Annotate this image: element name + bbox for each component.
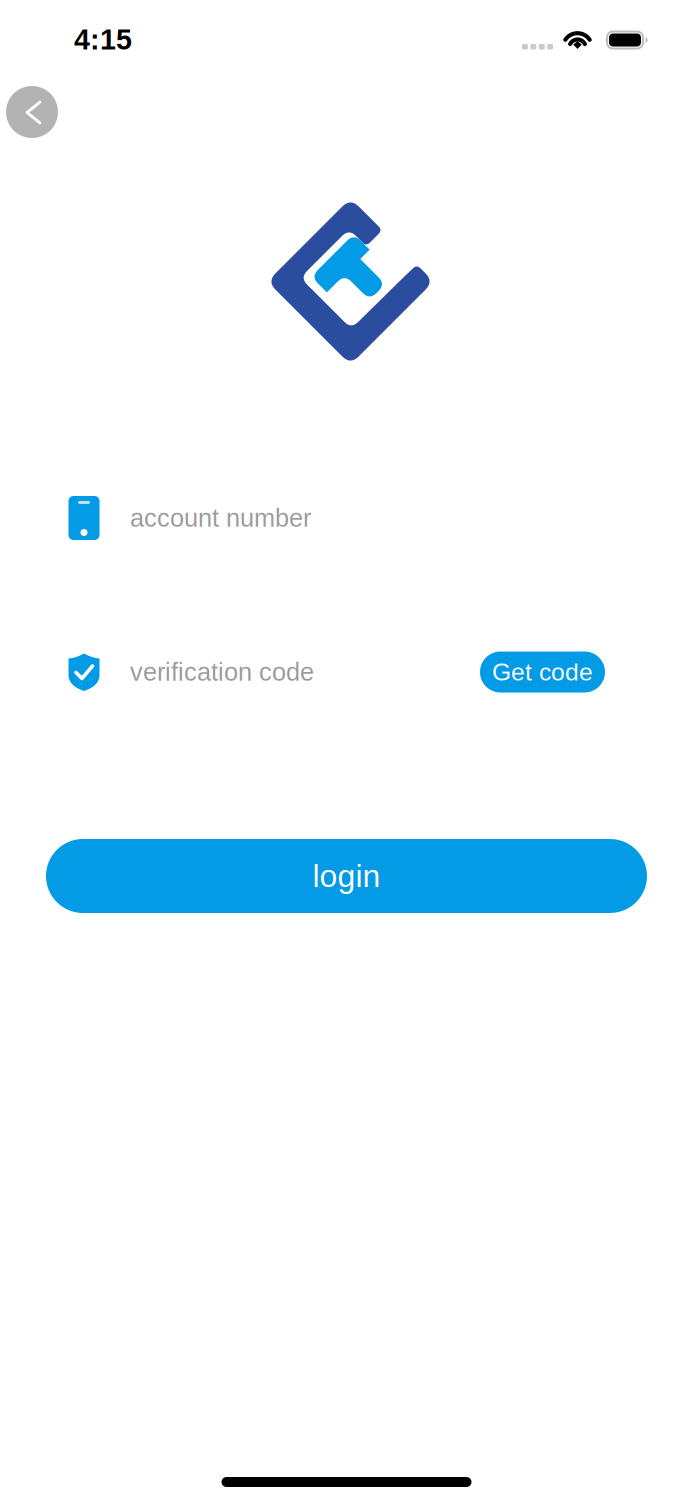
button[interactable]: login (46, 839, 647, 913)
staticText: verification code (130, 658, 314, 686)
staticText: Get code (492, 658, 593, 686)
button[interactable]: Get code (480, 651, 605, 692)
staticText: 4:15 (74, 23, 132, 55)
staticText: account number (130, 504, 311, 532)
staticText: login (312, 858, 380, 894)
button[interactable]: Back (6, 86, 58, 138)
